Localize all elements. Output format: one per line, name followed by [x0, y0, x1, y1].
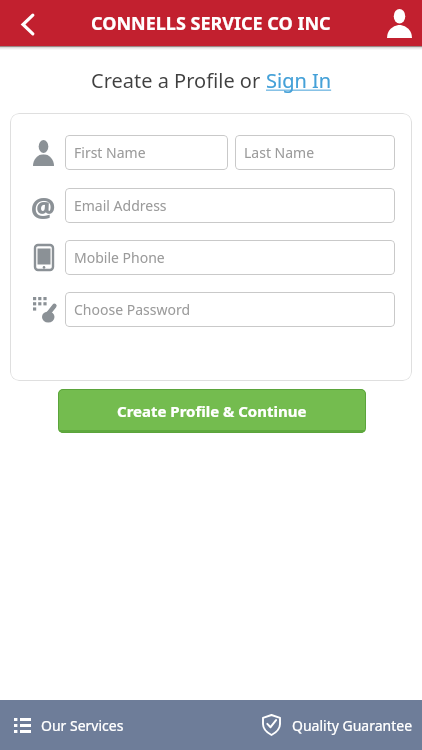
staticText: CONNELLS SERVICE CO INC: [91, 11, 331, 36]
button[interactable]: Last Name: [235, 135, 395, 170]
button[interactable]: [0, 0, 50, 46]
staticText: First Name: [74, 143, 146, 162]
button[interactable]: Our Services: [0, 700, 124, 750]
staticText: Create Profile & Continue: [117, 401, 307, 421]
staticText: Choose Password: [74, 300, 191, 319]
button[interactable]: Sign In: [266, 67, 332, 94]
button[interactable]: Create Profile & Continue: [58, 389, 366, 433]
staticText: @: [31, 188, 56, 223]
staticText: Create a Profile or: [91, 67, 266, 94]
button[interactable]: Mobile Phone: [65, 240, 395, 275]
staticText: Our Services: [41, 716, 124, 735]
button[interactable]: Choose Password: [65, 292, 395, 327]
button[interactable]: [376, 0, 422, 46]
staticText: Last Name: [244, 143, 315, 162]
button[interactable]: Email Address: [65, 188, 395, 223]
button[interactable]: Quality Guarantee: [262, 700, 422, 750]
staticText: Quality Guarantee: [292, 716, 413, 735]
staticText: Mobile Phone: [74, 248, 165, 267]
staticText: Email Address: [74, 196, 167, 215]
button[interactable]: First Name: [65, 135, 228, 170]
